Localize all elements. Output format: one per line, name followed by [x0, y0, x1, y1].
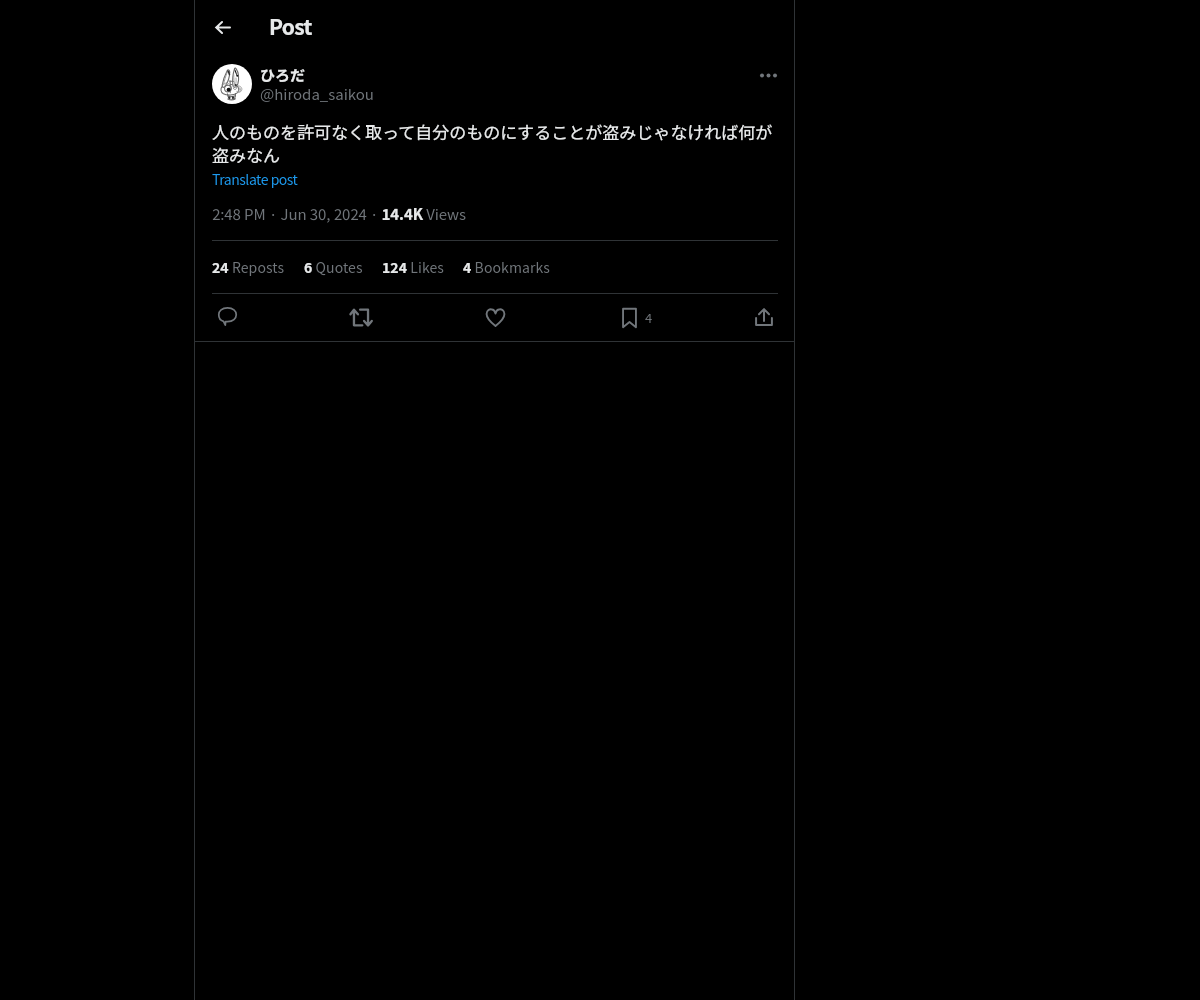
button[interactable]: Translate post: [212, 169, 298, 189]
button[interactable]: Share: [746, 299, 782, 336]
button[interactable]: Reply: [209, 298, 247, 335]
button[interactable]: 124 Likes: [382, 257, 444, 277]
staticText: ひろだ: [260, 64, 306, 86]
staticText: 4: [645, 308, 653, 327]
staticText: Post: [269, 11, 312, 41]
staticText: 人のものを許可なく取って自分のものにすることが盗みじゃなければ何が盗みなん: [212, 119, 778, 167]
staticText: 4 Bookmarks: [463, 257, 550, 277]
staticText: 124 Likes: [382, 257, 444, 277]
staticText: Translate post: [212, 169, 298, 189]
staticText: 24 Reposts: [212, 257, 285, 277]
button[interactable]: 6 Quotes: [304, 257, 363, 277]
button[interactable]: Back: [209, 15, 237, 39]
button[interactable]: @hiroda_saikou: [260, 83, 374, 105]
button[interactable]: 4 Bookmarks: [463, 257, 550, 277]
button[interactable]: ひろだ: [260, 64, 306, 86]
button[interactable]: Profile picture: [212, 64, 252, 104]
staticText: 6 Quotes: [304, 257, 363, 277]
button[interactable]: Repost: [341, 300, 381, 335]
button[interactable]: Bookmark: [613, 299, 646, 337]
button[interactable]: 24 Reposts: [212, 257, 285, 277]
staticText: 2:48 PM · Jun 30, 2024 · 14.4K Views: [212, 203, 466, 225]
button[interactable]: Like: [477, 299, 514, 335]
button[interactable]: More options: [754, 61, 782, 89]
staticText: @hiroda_saikou: [260, 83, 374, 105]
